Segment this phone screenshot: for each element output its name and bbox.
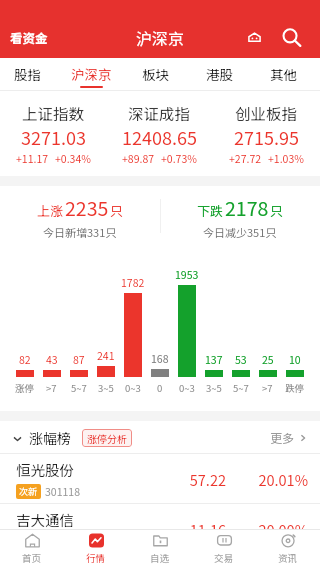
staticText: 300597 (16, 534, 51, 549)
staticText: 次新 (19, 485, 38, 498)
staticText: 1953 (175, 267, 199, 282)
staticText: 3271.03 (21, 124, 86, 150)
button[interactable]: 自选 (128, 529, 192, 569)
button[interactable]: 上证指数 (0, 91, 106, 176)
staticText: 资讯 (278, 551, 298, 565)
button[interactable]: 创业板指 (213, 91, 320, 176)
staticText: 0~3 (179, 381, 195, 395)
staticText: 今日新增331只 (43, 224, 117, 240)
staticText: +0.73% (161, 151, 197, 166)
staticText: 首页 (22, 551, 42, 565)
button[interactable]: 板块 (123, 58, 187, 91)
staticText: 301118 (45, 484, 80, 499)
staticText: 恒光股份 (16, 459, 74, 480)
staticText: 只 (110, 201, 124, 220)
staticText: 深证成指 (128, 102, 191, 124)
staticText: 5~7 (71, 381, 87, 395)
button[interactable]: 港股 (187, 58, 251, 91)
staticText: 只 (270, 201, 284, 220)
staticText: 82 (19, 352, 31, 367)
staticText: 创业板指 (235, 102, 298, 124)
staticText: 上涨 (37, 201, 64, 220)
staticText: +1.03% (268, 151, 304, 166)
button[interactable]: 更多 (270, 429, 308, 446)
staticText: 53 (235, 352, 247, 367)
staticText: 0~3 (125, 381, 141, 395)
staticText: 更多 (270, 429, 295, 446)
staticText: 今日减少351只 (203, 224, 277, 240)
staticText: 0 (157, 381, 163, 395)
button[interactable]: 恒光股份 (0, 454, 320, 504)
staticText: 下跌 (197, 201, 224, 220)
button[interactable]: 涨幅榜 (12, 428, 71, 448)
staticText: +89.87 (122, 151, 155, 166)
staticText: 板块 (142, 64, 169, 84)
button[interactable]: 股指 (0, 58, 59, 91)
staticText: 20.01% (226, 469, 308, 490)
button[interactable]: 深证成指 (106, 91, 213, 176)
staticText: 涨停 (15, 381, 35, 395)
staticText: 沪深京 (136, 26, 185, 49)
staticText: +11.17 (16, 151, 49, 166)
staticText: 5~7 (233, 381, 249, 395)
staticText: 港股 (206, 64, 233, 84)
staticText: 137 (205, 352, 223, 367)
staticText: +27.72 (229, 151, 262, 166)
staticText: 20.00% (226, 519, 308, 540)
staticText: 涨幅榜 (29, 428, 71, 448)
staticText: 行情 (86, 551, 106, 565)
staticText: 3~5 (98, 381, 114, 395)
staticText: 涨停分析 (87, 431, 127, 445)
staticText: 看资金 (10, 28, 48, 46)
staticText: 跌停 (285, 381, 305, 395)
button[interactable]: 交易 (192, 529, 256, 569)
staticText: 1782 (121, 275, 145, 290)
staticText: 12408.65 (122, 124, 197, 150)
staticText: 上证指数 (22, 102, 85, 124)
staticText: >7 (46, 381, 57, 395)
staticText: 57.22 (164, 469, 226, 490)
staticText: 交易 (214, 551, 234, 565)
staticText: 10 (289, 352, 301, 367)
staticText: 2235 (65, 193, 109, 221)
staticText: 吉大通信 (16, 509, 74, 530)
button[interactable]: 首页 (0, 529, 64, 569)
staticText: 2178 (225, 193, 269, 221)
staticText: +0.34% (55, 151, 91, 166)
button[interactable]: 行情 (64, 529, 128, 569)
staticText: 自选 (150, 551, 170, 565)
staticText: 25 (262, 352, 274, 367)
button[interactable]: 沪深京 (59, 58, 123, 91)
staticText: 87 (73, 352, 85, 367)
staticText: 其他 (270, 64, 297, 84)
button[interactable]: Customer service (244, 27, 264, 47)
staticText: 沪深京 (71, 64, 112, 84)
staticText: 股指 (14, 64, 41, 84)
button[interactable]: 吉大通信 (0, 504, 320, 554)
button[interactable]: 涨停分析 (82, 429, 132, 447)
staticText: 241 (97, 348, 115, 363)
button[interactable]: 其他 (251, 58, 315, 91)
button[interactable]: 资讯 (256, 529, 320, 569)
staticText: >7 (262, 381, 273, 395)
button[interactable]: 看资金 (10, 28, 48, 46)
staticText: 11.16 (164, 519, 226, 540)
staticText: 43 (46, 352, 58, 367)
button[interactable]: 下跌 (160, 186, 320, 246)
staticText: 3~5 (206, 381, 222, 395)
button[interactable]: 上涨 (0, 186, 160, 246)
button[interactable]: Search (280, 26, 302, 48)
staticText: 168 (151, 351, 169, 366)
staticText: 2715.95 (234, 124, 299, 150)
